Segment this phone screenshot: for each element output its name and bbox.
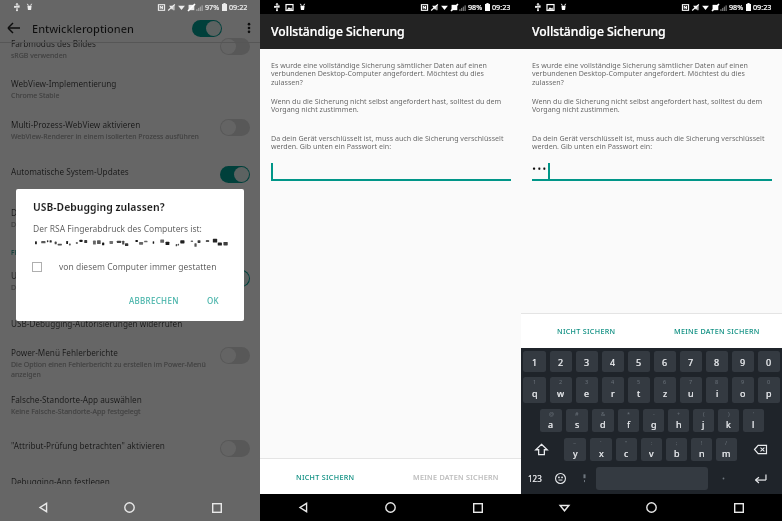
button[interactable]: ••• (532, 162, 772, 181)
staticText: 5 (637, 378, 641, 385)
button[interactable]: # (566, 409, 588, 432)
staticText: Vollständige Sicherung (271, 23, 405, 40)
button[interactable]: 9 (732, 351, 754, 372)
staticText: o (740, 387, 746, 399)
button[interactable]: Falsche-Standorte-App auswählen (0, 387, 260, 433)
button[interactable]: 123 (523, 467, 546, 490)
staticText: MEINE DATEN SICHERN (674, 326, 760, 336)
button[interactable]: "Attribut-Prüfung betrachten" aktivieren (0, 433, 260, 469)
button[interactable]: 8 (706, 351, 728, 372)
button[interactable]: Power-Menü Fehlerberichte (0, 340, 260, 387)
button[interactable]: Multi-Prozess-WebView aktivieren (0, 112, 260, 159)
button[interactable]: 4 (602, 377, 624, 403)
button[interactable]: von diesem Computer immer gestatten (33, 259, 231, 275)
staticText: WebView-Implementierung (11, 78, 117, 89)
staticText: Power-Menü Fehlerberichte (11, 347, 118, 358)
button[interactable]: MEINE DATEN SICHERN (390, 459, 521, 494)
button[interactable]: 6 (654, 377, 676, 403)
staticText: f (627, 418, 631, 430)
button[interactable]: 5 (628, 377, 650, 403)
button[interactable]: USB-Debugging (0, 263, 260, 311)
staticText: p (766, 387, 772, 399)
button[interactable]: 0 (758, 351, 780, 372)
button[interactable]: ! (691, 438, 712, 461)
button[interactable]: Zurück (521, 494, 608, 521)
button[interactable]: NICHT SICHERN (521, 314, 651, 348)
button[interactable]: 9 (732, 377, 754, 403)
button[interactable]: Startbildschirm (608, 494, 695, 521)
staticText: NICHT SICHERN (296, 472, 355, 482)
staticText: x (599, 447, 604, 459)
button[interactable]: Umschalttaste (523, 440, 560, 459)
button[interactable]: 4 (602, 351, 624, 372)
button[interactable]: Zurück (260, 494, 347, 521)
button[interactable]: Automatische System-Updates (0, 159, 260, 200)
button[interactable]: OK (201, 291, 225, 310)
staticText: NICHT SICHERN (557, 326, 616, 336)
button[interactable]: MEINE DATEN SICHERN (651, 314, 782, 348)
button[interactable]: ' (743, 409, 764, 432)
staticText: Wenn du die Sicherung nicht selbst angef… (532, 96, 772, 114)
button[interactable]: 7 (680, 351, 702, 372)
staticText: 7 (689, 378, 693, 385)
button[interactable]: Desktop-Sicherung-Passwort (0, 200, 260, 241)
button[interactable]: 0 (758, 377, 780, 403)
button[interactable]: / (716, 438, 737, 461)
button[interactable]: Übersicht (434, 494, 521, 521)
button[interactable]: ~ (564, 438, 586, 461)
button[interactable]: 1 (523, 351, 546, 372)
button[interactable]: ( (693, 409, 714, 432)
button[interactable]: - (643, 409, 664, 432)
button[interactable]: WebView-Implementierung (0, 71, 260, 112)
button[interactable]: 8 (706, 377, 728, 403)
staticText: 4 (610, 356, 616, 368)
button[interactable]: 5 (628, 351, 650, 372)
button[interactable]: USB-Debugging-Autorisierungen widerrufen (0, 311, 260, 340)
button[interactable]: ´ (590, 438, 612, 461)
button[interactable]: Weitere Optionen (242, 14, 255, 42)
button[interactable]: Debugging-App festlegen (0, 469, 260, 484)
staticText: 4 (611, 378, 615, 385)
staticText: 97% (205, 2, 220, 12)
staticText: Da dein Gerät verschlüsselt ist, muss au… (271, 133, 511, 151)
button[interactable]: " (616, 438, 637, 461)
button[interactable]: ) (718, 409, 739, 432)
button[interactable]: * (618, 409, 639, 432)
button[interactable]: ABBRECHEN (123, 291, 185, 310)
button[interactable]: 3 (576, 351, 598, 372)
button[interactable]: 2 (550, 351, 572, 372)
button[interactable]: Eingabe (741, 469, 780, 488)
staticText: e (584, 387, 590, 399)
button[interactable]: Farbmodus des Bildes (0, 31, 260, 71)
button[interactable]: 1 (523, 377, 546, 403)
button[interactable]: Löschen (741, 440, 780, 459)
button[interactable]: Zurück (0, 494, 86, 521)
staticText: * (627, 410, 631, 417)
button[interactable]: Übersicht (173, 494, 260, 521)
button[interactable]: @ (540, 409, 562, 432)
staticText: Es wurde eine vollständige Sicherung säm… (271, 60, 511, 87)
button[interactable]: Entwickleroptionen umschalten (192, 20, 222, 37)
staticText: Desktop-Vollsicherungen sind derzeit nic… (11, 220, 186, 230)
button[interactable]: 3 (576, 377, 598, 403)
staticText: h (676, 418, 682, 430)
button[interactable]: ; (666, 438, 687, 461)
button[interactable]: Startbildschirm (86, 494, 173, 521)
button[interactable]: 6 (654, 351, 676, 372)
button[interactable] (271, 162, 511, 181)
button[interactable]: Punkt (710, 469, 737, 488)
button[interactable]: Startbildschirm (347, 494, 434, 521)
staticText: 1 (533, 378, 537, 385)
button[interactable]: Back (0, 14, 28, 42)
button[interactable]: Übersicht (695, 494, 782, 521)
button[interactable]: 7 (680, 377, 702, 403)
staticText: 5 (636, 356, 642, 368)
button[interactable]: Mikrofon (575, 469, 594, 488)
button[interactable]: + (668, 409, 689, 432)
button[interactable]: NICHT SICHERN (260, 459, 390, 494)
button[interactable]: Emoji (550, 469, 571, 488)
button[interactable]: & (592, 409, 614, 432)
button[interactable]: 2 (550, 377, 572, 403)
button[interactable]: : (641, 438, 662, 461)
